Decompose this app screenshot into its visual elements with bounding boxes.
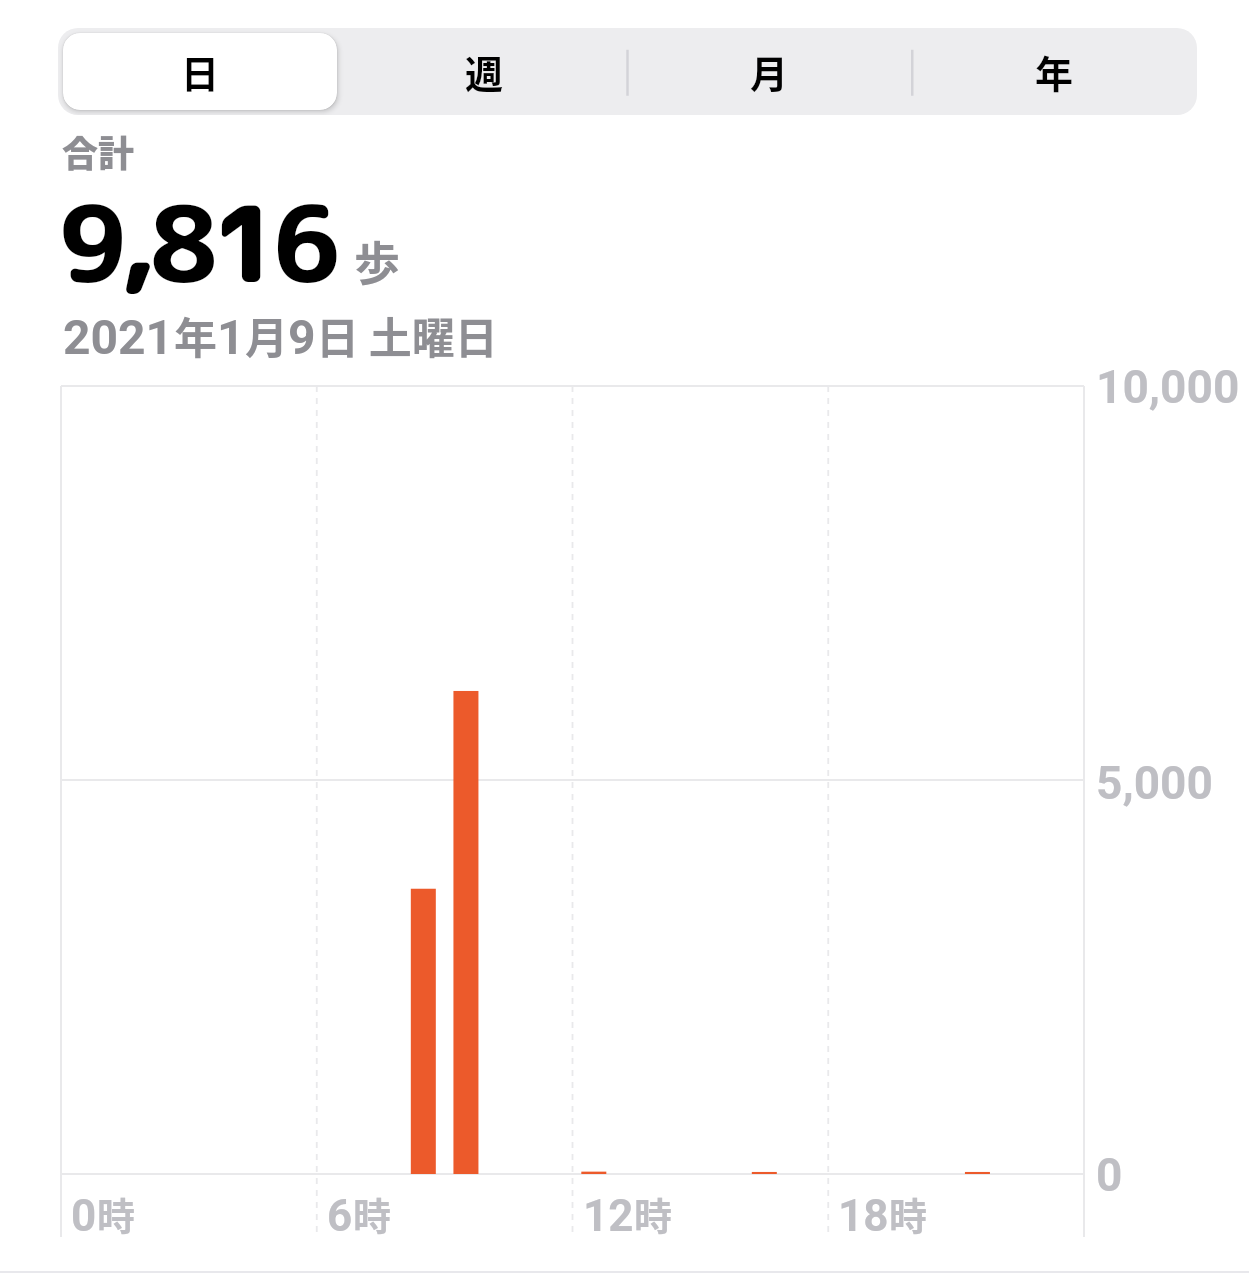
staticText: 18 (838, 1190, 889, 1242)
staticText: 9,816 (59, 170, 335, 315)
staticText: 日 (181, 44, 220, 99)
staticText: 0 (71, 1190, 97, 1242)
staticText: 歩 (354, 227, 400, 294)
staticText: 時 (353, 1186, 392, 1241)
staticText: 月 (245, 304, 288, 366)
button[interactable]: 週 (342, 28, 627, 115)
staticText: 12 (583, 1190, 634, 1242)
staticText: 2021 (63, 309, 174, 365)
staticText: 合計 (62, 125, 135, 177)
staticText: 10,000 (1096, 360, 1240, 414)
staticText: 時 (889, 1186, 928, 1241)
staticText: 5,000 (1096, 756, 1213, 810)
staticText: 時 (634, 1186, 673, 1241)
staticText: 週 (465, 44, 504, 99)
staticText: 0 (1096, 1148, 1123, 1202)
staticText: 9 (288, 309, 316, 365)
staticText: 日 土曜日 (316, 304, 498, 366)
staticText: 1 (217, 309, 245, 365)
staticText: 月 (750, 44, 789, 99)
staticText: 年 (174, 304, 217, 366)
button[interactable]: 年 (912, 28, 1197, 115)
staticText: 6 (327, 1190, 353, 1242)
staticText: 時 (97, 1186, 136, 1241)
button[interactable]: 日 (58, 28, 342, 115)
staticText: 年 (1035, 44, 1074, 99)
button[interactable]: 月 (627, 28, 912, 115)
